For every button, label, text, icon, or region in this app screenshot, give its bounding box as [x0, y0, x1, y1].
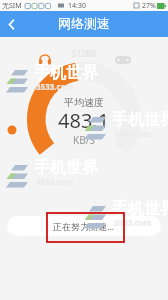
staticText: 3533.com	[36, 81, 74, 92]
staticText: 3533.com	[114, 128, 152, 139]
staticText: 3533.com	[114, 217, 152, 228]
staticText: 手机世界	[34, 158, 98, 178]
staticText: 3533.com	[36, 176, 74, 187]
staticText: 512KB	[72, 48, 96, 59]
staticText: 无SIM	[2, 1, 22, 11]
staticText: KB/S	[73, 133, 95, 147]
staticText: 正在努力测速...	[53, 220, 115, 232]
staticText: 14:30	[68, 1, 86, 11]
staticText: 手机世界	[112, 199, 168, 219]
staticText: 手机世界	[34, 63, 98, 83]
button[interactable]: Back	[0, 11, 22, 37]
staticText: 平均速度	[64, 96, 104, 109]
button[interactable]: 正在努力测速...	[7, 216, 161, 236]
staticText: 网络测速	[58, 15, 110, 31]
staticText: 27%	[142, 1, 156, 11]
staticText: 483.1	[58, 107, 110, 134]
staticText: 手机世界	[112, 110, 168, 130]
